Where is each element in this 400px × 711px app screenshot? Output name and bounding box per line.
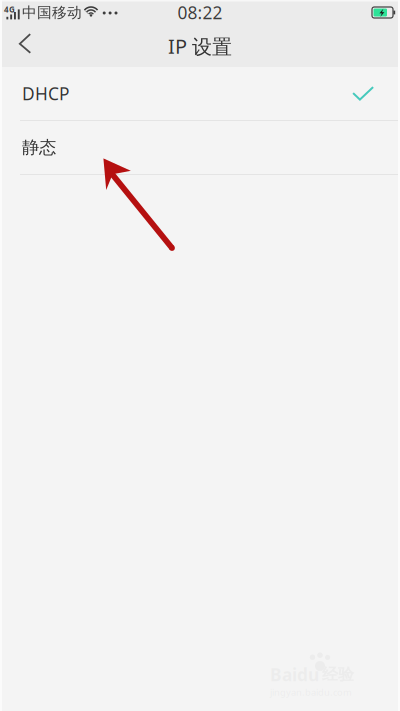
staticText: 08:22: [177, 1, 222, 24]
button[interactable]: DHCP: [0, 67, 400, 121]
staticText: 中国移动: [22, 3, 82, 21]
staticText: DHCP: [22, 82, 69, 105]
staticText: Baidu: [270, 663, 319, 686]
staticText: 经验: [322, 665, 354, 684]
staticText: 静态: [22, 137, 56, 158]
staticText: IP 设置: [168, 33, 232, 59]
staticText: 4G: [4, 4, 15, 15]
button[interactable]: 静态: [0, 121, 400, 175]
button[interactable]: Back: [0, 25, 44, 67]
